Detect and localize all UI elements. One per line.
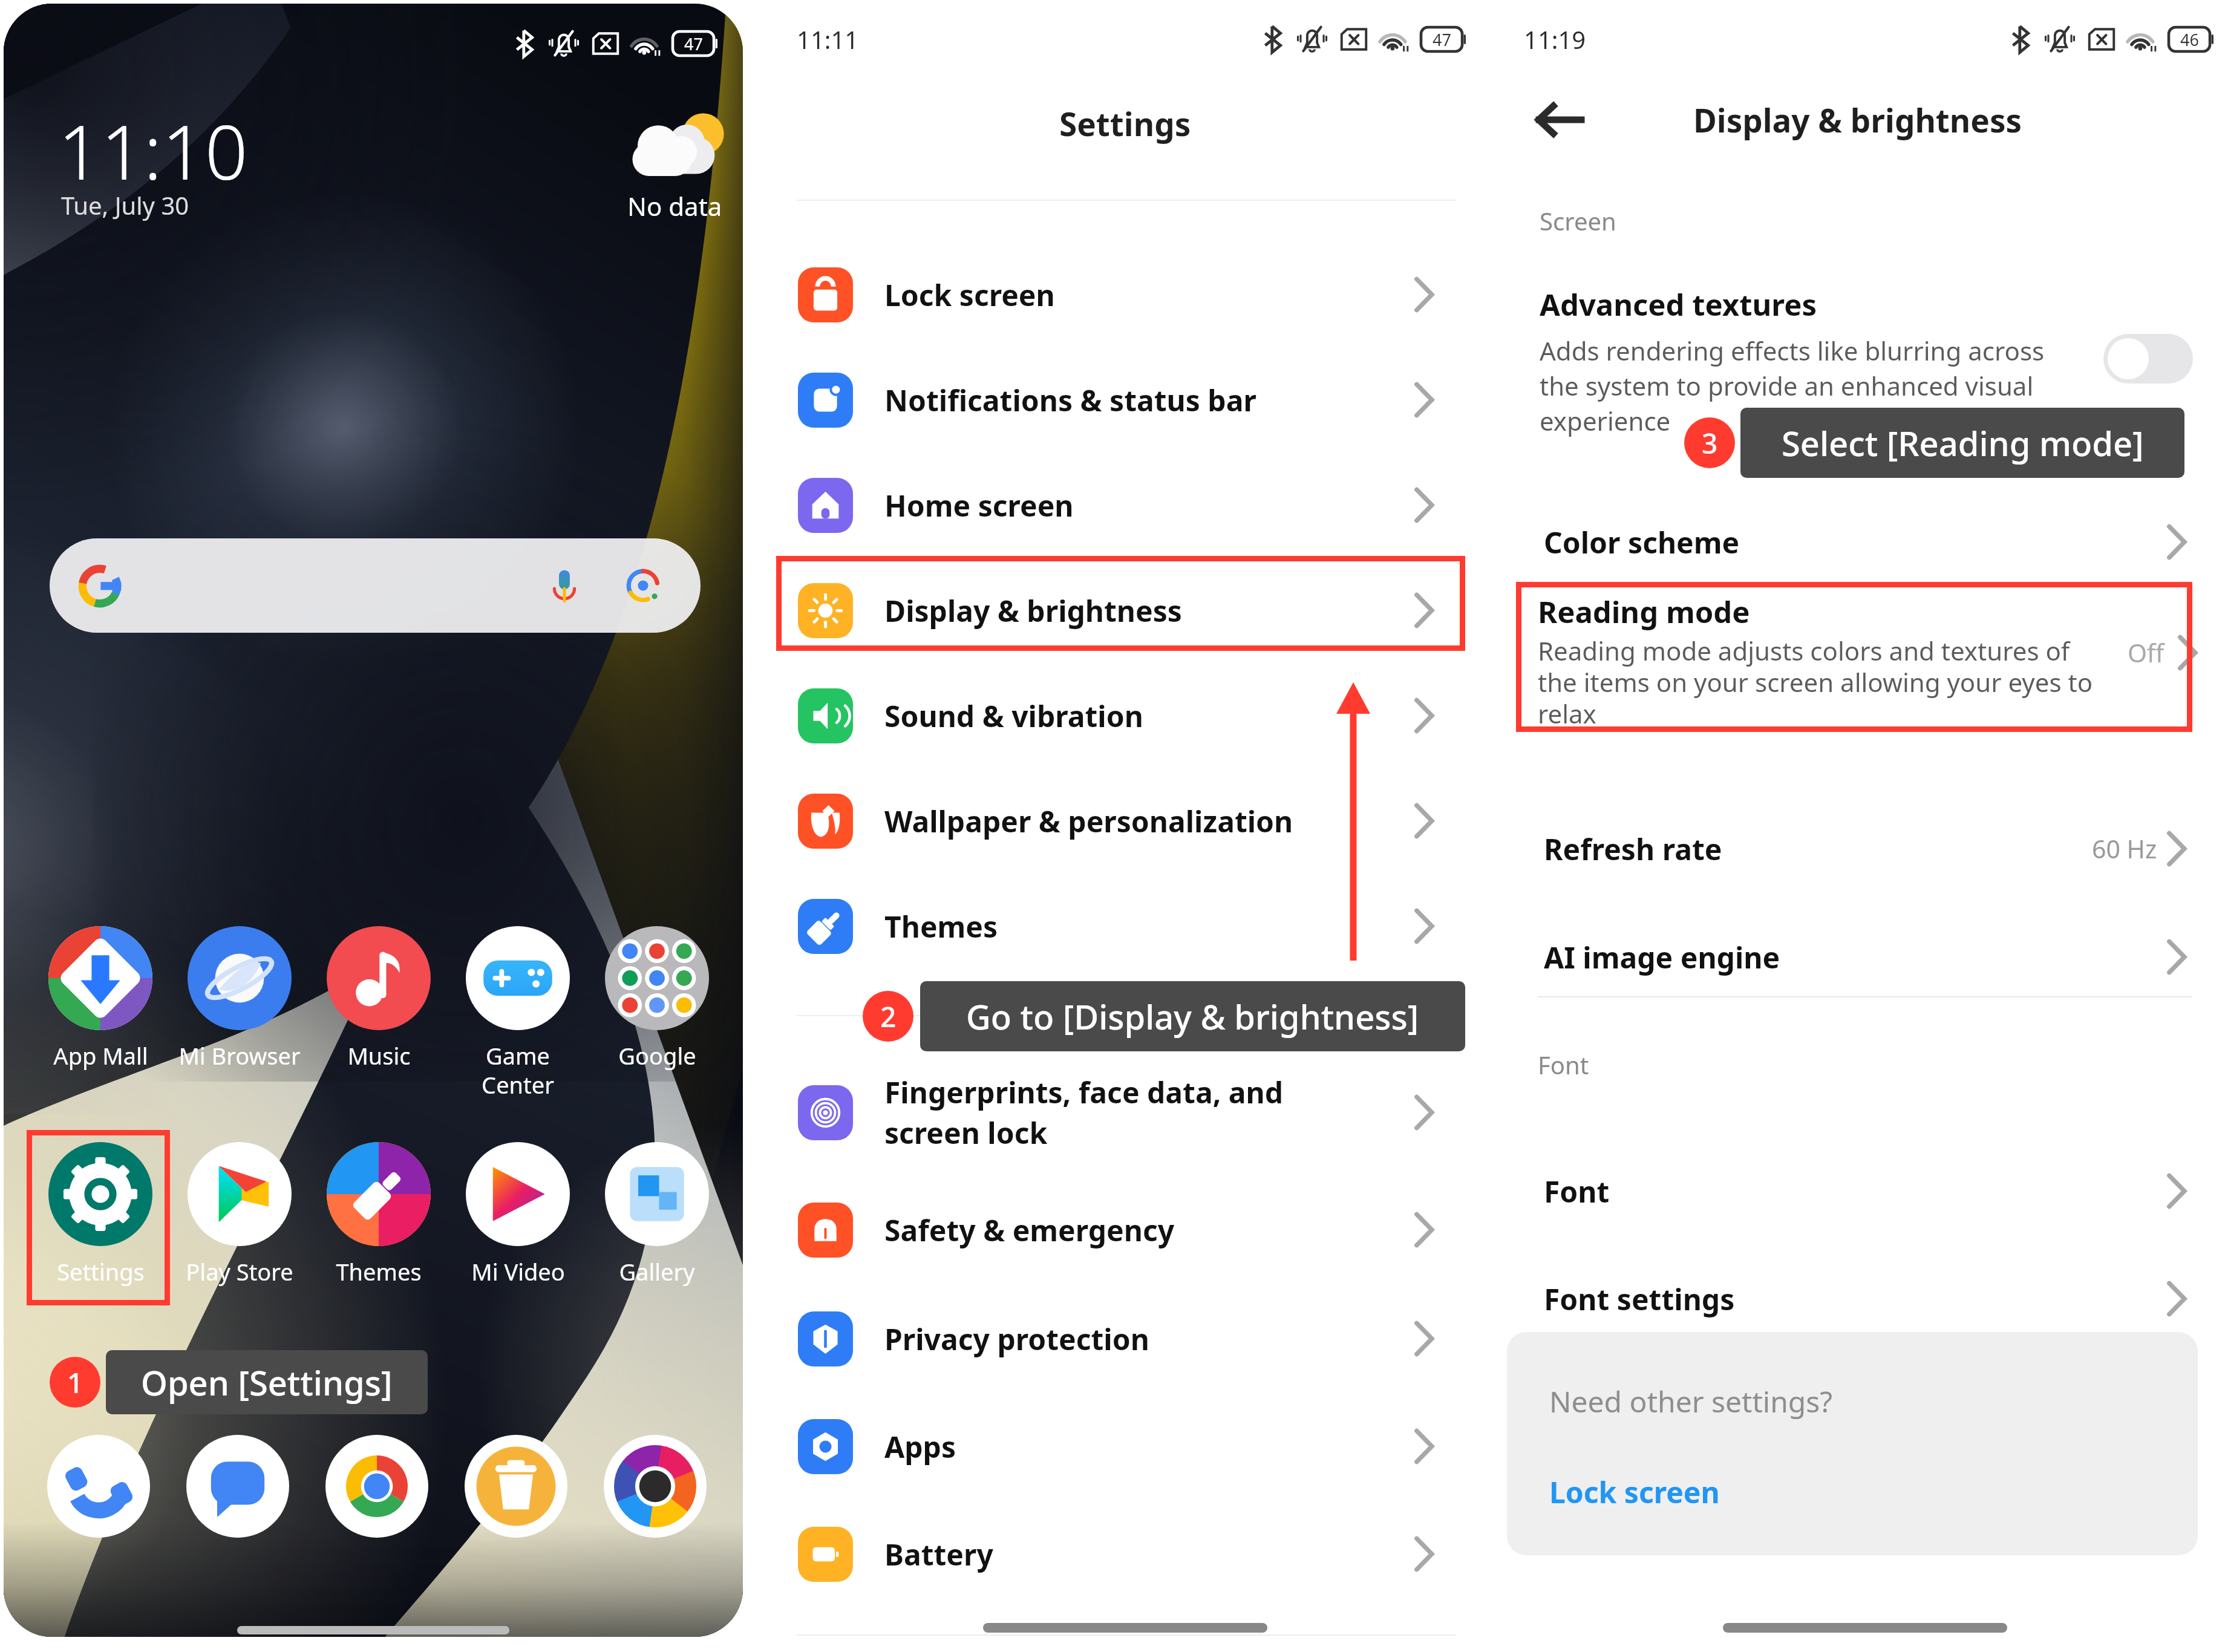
staticText: Need other settings? xyxy=(1549,1382,1833,1421)
staticText: Font xyxy=(1538,1048,1589,1081)
button[interactable]: 11:10 xyxy=(52,94,342,227)
button[interactable]: Wallpaper & personalization xyxy=(798,776,1434,866)
staticText: Reading mode xyxy=(1538,592,1750,632)
staticText: 47 xyxy=(684,33,703,55)
staticText: Apps xyxy=(884,1427,1414,1466)
staticText: Settings xyxy=(1059,102,1191,145)
staticText: 1 xyxy=(67,1363,83,1402)
staticText: Font xyxy=(1544,1172,2167,1211)
staticText: Screen xyxy=(1540,204,1616,237)
staticText: Google xyxy=(618,1040,696,1071)
button[interactable]: Advanced textures toggle, off xyxy=(2103,334,2193,384)
button[interactable] xyxy=(604,1435,707,1538)
staticText: Refresh rate xyxy=(1544,829,2092,869)
staticText: Tue, July 30 xyxy=(61,189,189,221)
staticText: Fingerprints, face data, and screen lock xyxy=(884,1072,1414,1152)
staticText: Privacy protection xyxy=(884,1319,1414,1359)
button[interactable]: Lock screen xyxy=(1549,1472,1720,1512)
staticText: Adds rendering effects like blurring acr… xyxy=(1540,333,2045,438)
staticText: Go to [Display & brightness] xyxy=(966,993,1419,1039)
button[interactable]: Search with Google xyxy=(50,538,701,633)
button[interactable]: Voice search xyxy=(531,552,598,619)
staticText: Play Store xyxy=(186,1256,293,1287)
staticText: Settings xyxy=(57,1256,145,1287)
button[interactable]: Font settings xyxy=(1544,1256,2186,1341)
staticText: 11:10 xyxy=(58,99,248,201)
button[interactable]: Color scheme xyxy=(1544,500,2186,584)
button[interactable]: AI image engine xyxy=(1544,915,2186,999)
staticText: Font settings xyxy=(1544,1279,2167,1319)
staticText: Battery xyxy=(884,1535,1414,1574)
staticText: Wallpaper & personalization xyxy=(884,802,1414,841)
button[interactable]: Mi Video xyxy=(451,1142,584,1287)
staticText: Themes xyxy=(336,1256,422,1287)
staticText: 11:11 xyxy=(797,23,859,56)
staticText: Themes xyxy=(884,907,1414,946)
staticText: Game Center xyxy=(482,1040,554,1100)
button[interactable]: Gallery xyxy=(590,1142,724,1287)
button[interactable]: Mi Browser xyxy=(173,926,306,1071)
button[interactable]: Themes xyxy=(312,1142,445,1287)
button[interactable]: Back xyxy=(1529,90,1590,150)
button[interactable]: Play Store xyxy=(173,1142,306,1287)
staticText: Color scheme xyxy=(1544,523,2167,562)
button[interactable]: Display & brightness xyxy=(798,566,1434,655)
button[interactable]: Privacy protection xyxy=(798,1294,1434,1383)
staticText: 2 xyxy=(880,997,897,1036)
staticText: Display & brightness xyxy=(1693,98,2022,142)
staticText: Safety & emergency xyxy=(884,1210,1414,1250)
button[interactable]: Music xyxy=(312,926,445,1071)
button[interactable] xyxy=(47,1435,150,1538)
button[interactable]: Apps xyxy=(798,1402,1434,1491)
staticText: 46 xyxy=(2180,28,2199,51)
staticText: Lock screen xyxy=(884,275,1414,315)
staticText: No data xyxy=(627,189,722,223)
button[interactable] xyxy=(186,1435,289,1538)
button[interactable]: Notifications & status bar xyxy=(798,355,1434,445)
button[interactable] xyxy=(325,1435,428,1538)
staticText: Display & brightness xyxy=(884,591,1414,630)
button[interactable]: Themes xyxy=(798,881,1434,971)
button[interactable]: App Mall xyxy=(34,926,167,1071)
button[interactable] xyxy=(465,1435,567,1538)
staticText: 60 Hz xyxy=(2092,832,2157,866)
button[interactable]: Advanced textures xyxy=(1540,284,2196,438)
staticText: Mi Video xyxy=(471,1256,565,1287)
button[interactable]: Settings xyxy=(34,1142,167,1287)
staticText: 3 xyxy=(1702,424,1718,462)
staticText: Select [Reading mode] xyxy=(1782,420,2144,466)
staticText: Home screen xyxy=(884,486,1414,525)
button[interactable]: Sound & vibration xyxy=(798,671,1434,760)
staticText: Music xyxy=(347,1040,411,1071)
staticText: Off xyxy=(2128,636,2165,670)
button[interactable]: Fingerprints, face data, and screen lock xyxy=(798,1052,1434,1173)
button[interactable]: Lock screen xyxy=(798,250,1434,339)
staticText: AI image engine xyxy=(1544,938,2167,977)
staticText: Reading mode adjusts colors and textures… xyxy=(1538,633,2093,731)
staticText: Open [Settings] xyxy=(141,1359,393,1405)
staticText: Gallery xyxy=(619,1256,695,1287)
button[interactable]: Safety & emergency xyxy=(798,1185,1434,1275)
button[interactable]: Game Center xyxy=(451,926,584,1100)
button[interactable]: Home screen xyxy=(798,460,1434,550)
staticText: 11:19 xyxy=(1524,23,1586,56)
button[interactable]: Refresh rate xyxy=(1544,806,2186,891)
button[interactable]: Font xyxy=(1544,1149,2186,1233)
button[interactable]: Reading mode xyxy=(1538,592,2197,731)
staticText: Notifications & status bar xyxy=(884,380,1414,420)
button[interactable]: Google xyxy=(590,926,724,1071)
staticText: Mi Browser xyxy=(178,1040,301,1071)
staticText: 47 xyxy=(1433,28,1451,51)
button[interactable]: Google Lens xyxy=(610,552,676,619)
staticText: Sound & vibration xyxy=(884,696,1414,736)
staticText: Advanced textures xyxy=(1540,284,1817,325)
staticText: App Mall xyxy=(53,1040,148,1071)
button[interactable]: No data xyxy=(609,106,739,233)
button[interactable]: Battery xyxy=(798,1509,1434,1599)
